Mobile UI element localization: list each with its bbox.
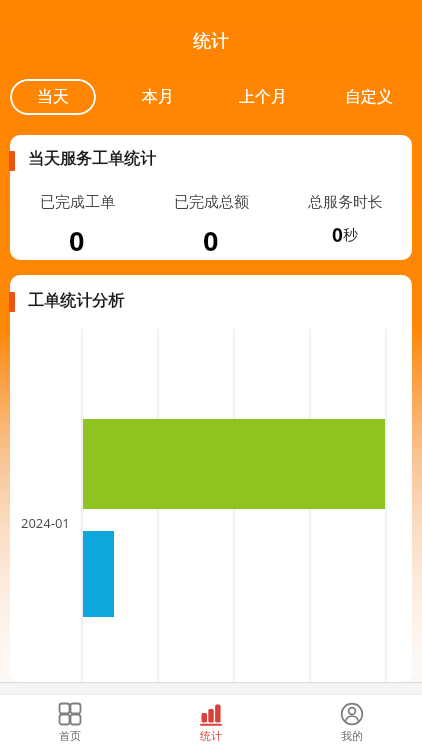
staticText: 当天服务工单统计 (28, 149, 156, 169)
staticText: 已完成工单 (40, 193, 115, 212)
button[interactable]: 我的 (281, 695, 422, 750)
staticText: 秒 (343, 226, 358, 245)
button[interactable]: 上个月 (210, 87, 316, 107)
staticText: 当天 (37, 87, 69, 107)
button[interactable]: 自定义 (316, 87, 422, 107)
staticText: 自定义 (345, 87, 393, 107)
staticText: 统计 (193, 30, 229, 53)
staticText: 2024-01 (21, 514, 70, 532)
button[interactable]: 统计 (140, 695, 281, 750)
staticText: 0 (203, 222, 219, 259)
staticText: 上个月 (239, 87, 287, 107)
staticText: 统计 (200, 729, 222, 743)
button[interactable]: 当天 (10, 79, 96, 115)
staticText: 工单统计分析 (28, 291, 124, 311)
staticText: 本月 (142, 87, 174, 107)
staticText: 我的 (341, 729, 363, 743)
staticText: 0 (69, 222, 85, 259)
staticText: 总服务时长 (308, 193, 383, 212)
button[interactable]: 本月 (105, 87, 210, 107)
button[interactable]: 首页 (0, 695, 140, 750)
staticText: 首页 (59, 729, 81, 743)
staticText: 0 (332, 222, 343, 248)
staticText: 已完成总额 (174, 193, 249, 212)
